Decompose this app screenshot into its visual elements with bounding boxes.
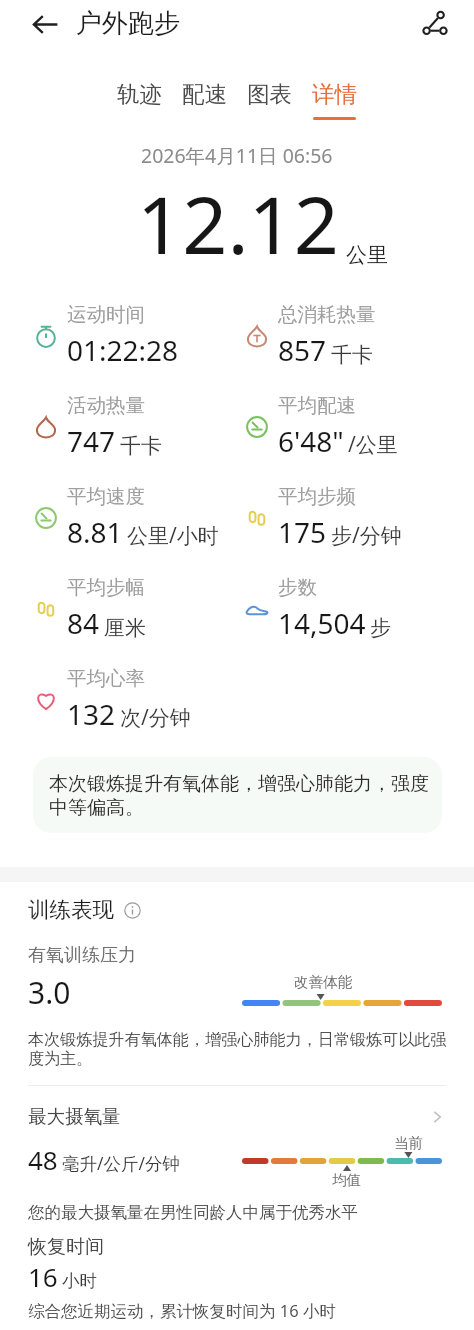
- button[interactable]: 图表: [237, 48, 302, 120]
- staticText: 次/分钟: [120, 703, 191, 732]
- staticText: 14,504: [278, 604, 366, 642]
- staticText: 轨迹: [117, 80, 162, 108]
- staticText: 总消耗热量: [278, 302, 376, 327]
- staticText: 配速: [182, 80, 227, 108]
- staticText: 公里/小时: [127, 521, 219, 550]
- button[interactable]: Back: [22, 1, 68, 47]
- button[interactable]: 最大摄氧量: [28, 1105, 446, 1128]
- staticText: 改善体能: [294, 973, 353, 991]
- staticText: 本次锻炼提升有氧体能，增强心肺能力，日常锻炼可以此强度为主。: [28, 1029, 448, 1068]
- staticText: 平均速度: [67, 484, 145, 509]
- staticText: 3.0: [28, 972, 71, 1012]
- staticText: 步: [370, 615, 391, 641]
- staticText: 您的最大摄氧量在男性同龄人中属于优秀水平: [28, 1202, 358, 1223]
- staticText: 84: [67, 604, 100, 642]
- button[interactable]: 本次锻炼提升有氧体能，增强心肺能力，强度中等偏高。: [33, 757, 442, 833]
- staticText: 平均步频: [278, 484, 356, 509]
- button[interactable]: 配速: [172, 48, 237, 120]
- staticText: 本次锻炼提升有氧体能，增强心肺能力，强度中等偏高。: [49, 772, 436, 820]
- staticText: 公里: [346, 242, 388, 268]
- staticText: 747: [67, 422, 116, 460]
- button[interactable]: 轨迹: [107, 48, 172, 120]
- staticText: 平均心率: [67, 666, 145, 691]
- button[interactable]: 详情: [302, 48, 367, 120]
- staticText: 小时: [62, 1270, 97, 1292]
- staticText: 平均步幅: [67, 575, 145, 600]
- staticText: 千卡: [331, 342, 373, 368]
- staticText: 6'48": [278, 422, 344, 460]
- staticText: 48: [28, 1142, 58, 1177]
- staticText: 最大摄氧量: [28, 1105, 121, 1128]
- staticText: 16: [28, 1259, 58, 1294]
- staticText: 8.81: [67, 513, 123, 551]
- staticText: 厘米: [104, 615, 146, 641]
- button[interactable]: Share: [412, 1, 458, 47]
- staticText: 均值: [332, 1171, 362, 1189]
- staticText: 01:22:28: [67, 331, 179, 369]
- staticText: 步/分钟: [331, 521, 402, 550]
- staticText: 12.12: [137, 170, 339, 278]
- staticText: 132: [67, 695, 116, 733]
- staticText: 有氧训练压力: [28, 944, 136, 967]
- staticText: 训练表现: [28, 896, 114, 923]
- staticText: 175: [278, 513, 327, 551]
- staticText: 857: [278, 331, 327, 369]
- staticText: 运动时间: [67, 302, 145, 327]
- staticText: 户外跑步: [76, 7, 180, 40]
- staticText: 详情: [312, 80, 357, 108]
- staticText: 平均配速: [278, 393, 356, 418]
- button[interactable]: Info: [122, 900, 142, 920]
- staticText: /公里: [348, 430, 398, 459]
- staticText: 毫升/公斤/分钟: [62, 1151, 181, 1175]
- staticText: 当前: [394, 1134, 424, 1152]
- staticText: 综合您近期运动，累计恢复时间为 16 小时: [28, 1299, 336, 1322]
- staticText: 步数: [278, 575, 317, 600]
- staticText: 2026年4月11日 06:56: [141, 142, 333, 169]
- staticText: 千卡: [120, 433, 162, 459]
- staticText: 活动热量: [67, 393, 145, 418]
- staticText: 恢复时间: [28, 1235, 104, 1259]
- staticText: 图表: [247, 80, 292, 108]
